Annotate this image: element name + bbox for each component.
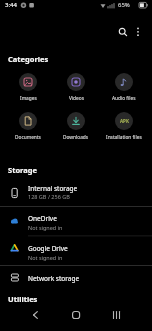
staticText: 3:44 xyxy=(5,1,17,9)
staticText: Internal storage xyxy=(28,184,78,193)
staticText: Documents xyxy=(15,134,41,141)
staticText: OneDrive xyxy=(28,214,57,223)
staticText: Downloads xyxy=(63,134,89,141)
staticText: Storage xyxy=(8,165,37,175)
staticText: Utilities xyxy=(8,294,38,304)
staticText: Network storage xyxy=(28,274,80,283)
staticText: APK xyxy=(120,118,129,124)
staticText: Audio files xyxy=(112,95,136,102)
staticText: 65% xyxy=(118,1,130,9)
staticText: Categories xyxy=(8,54,49,64)
staticText: Not signed in xyxy=(28,254,63,261)
staticText: 128 GB / 256 GB xyxy=(28,193,70,200)
staticText: Not signed in xyxy=(28,224,63,231)
staticText: Videos xyxy=(69,95,84,102)
staticText: Google Drive xyxy=(28,244,68,253)
staticText: Installation files xyxy=(106,134,142,141)
staticText: Images xyxy=(20,95,37,102)
